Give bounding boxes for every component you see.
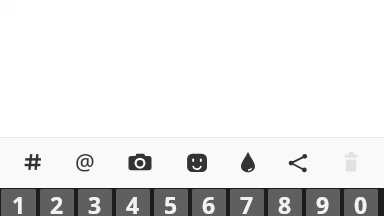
button[interactable]: 9 [306, 189, 340, 216]
button[interactable]: Delete [329, 140, 373, 184]
staticText: 5 [164, 189, 178, 216]
button[interactable]: 6 [192, 189, 226, 216]
staticText: 2 [50, 189, 64, 216]
staticText: 8 [278, 189, 292, 216]
button[interactable]: 5 [154, 189, 188, 216]
button[interactable]: 7 [230, 189, 264, 216]
staticText: 0 [354, 189, 368, 216]
button[interactable]: 4 [116, 189, 150, 216]
staticText: 9 [316, 189, 330, 216]
staticText: 4 [126, 189, 140, 216]
button[interactable]: 0 [344, 189, 378, 216]
button[interactable]: 8 [268, 189, 302, 216]
button[interactable]: Share [276, 141, 320, 185]
staticText: @ [75, 146, 95, 176]
staticText: 3 [88, 189, 102, 216]
button[interactable]: 3 [78, 189, 112, 216]
staticText: 6 [202, 189, 216, 216]
button[interactable]: Camera [118, 140, 162, 184]
button[interactable]: Mention [63, 139, 107, 183]
staticText: 1 [12, 189, 26, 216]
staticText: 7 [240, 189, 254, 216]
button[interactable]: Emoji [175, 141, 219, 185]
button[interactable]: Ink [226, 140, 270, 184]
button[interactable]: 1 [1, 189, 36, 216]
button[interactable]: 2 [40, 189, 74, 216]
button[interactable]: Hashtag [11, 140, 55, 184]
